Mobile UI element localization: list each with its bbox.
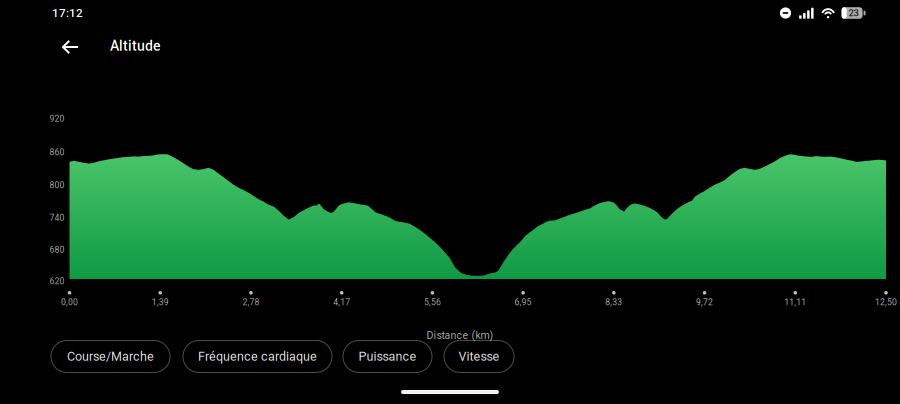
staticText: 1,39 — [152, 297, 169, 307]
staticText: 12,50 — [875, 297, 897, 307]
staticText: Course/Marche — [67, 349, 154, 364]
staticText: 9,72 — [696, 297, 713, 307]
staticText: 860 — [49, 147, 64, 157]
staticText: 5,56 — [424, 297, 441, 307]
staticText: Puissance — [358, 349, 416, 364]
staticText: Distance (km) — [426, 329, 493, 342]
staticText: 740 — [49, 213, 64, 223]
button[interactable]: Back — [50, 27, 91, 67]
staticText: 0,00 — [61, 297, 78, 307]
staticText: 920 — [49, 114, 64, 124]
staticText: 8,33 — [605, 297, 622, 307]
staticText: 800 — [49, 180, 64, 190]
staticText: Vitesse — [458, 349, 499, 364]
staticText: 17:12 — [52, 6, 83, 20]
staticText: Altitude — [110, 38, 160, 54]
button[interactable]: Fréquence cardiaque — [183, 340, 332, 372]
button[interactable]: Vitesse — [444, 340, 514, 372]
staticText: Fréquence cardiaque — [198, 349, 317, 364]
button[interactable]: Course/Marche — [51, 340, 170, 372]
staticText: 11,11 — [784, 297, 806, 307]
staticText: 680 — [49, 245, 64, 255]
staticText: 2,78 — [242, 297, 259, 307]
button[interactable]: Puissance — [343, 340, 432, 372]
staticText: 4,17 — [333, 297, 350, 307]
staticText: 6,95 — [515, 297, 532, 307]
staticText: 620 — [49, 276, 64, 286]
staticText: 23 — [848, 7, 858, 19]
